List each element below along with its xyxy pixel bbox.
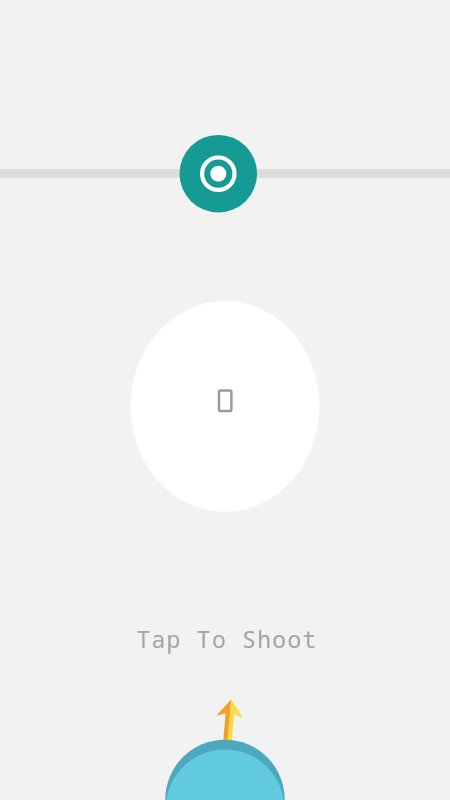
button[interactable]: Tap to shoot	[0, 0, 450, 800]
button[interactable]: Tap To Shoot	[136, 623, 318, 654]
button[interactable]: Target	[179, 134, 257, 212]
button[interactable]: Bubble	[130, 301, 319, 512]
